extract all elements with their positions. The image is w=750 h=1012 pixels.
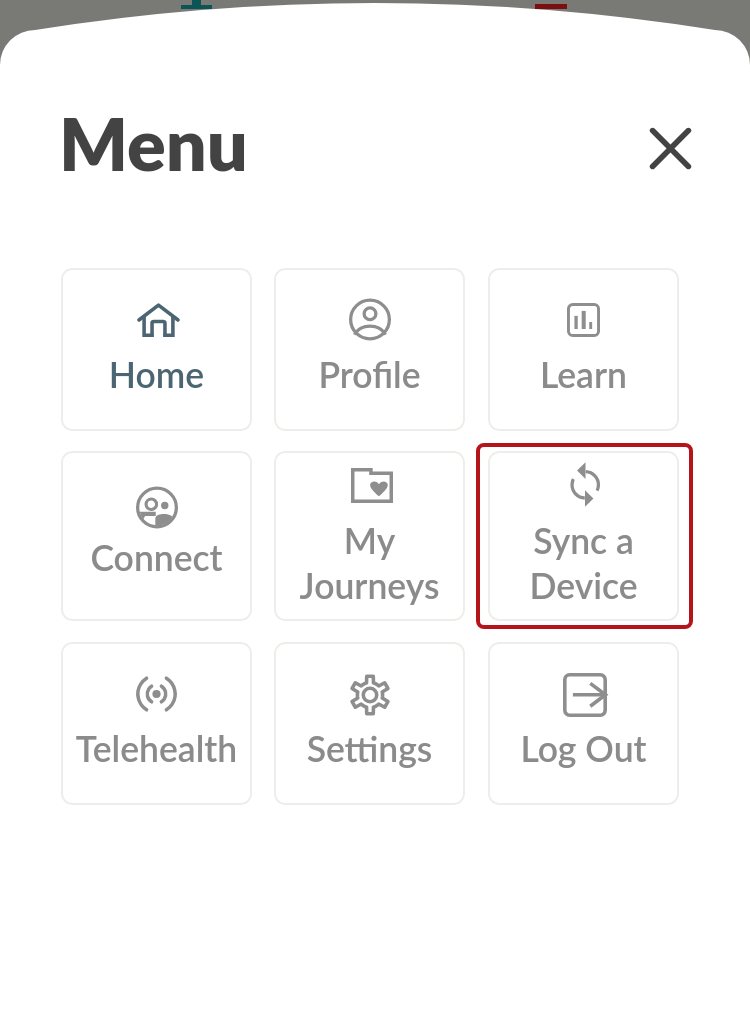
staticText: Telehealth	[61, 727, 252, 770]
button[interactable]: Profile	[274, 268, 465, 431]
button[interactable]: Sync a Device	[488, 451, 679, 621]
staticText: Log Out	[488, 727, 679, 770]
staticText: Settings	[274, 727, 465, 770]
button[interactable]: Learn	[488, 268, 679, 431]
staticText: Connect	[61, 536, 252, 579]
staticText: Learn	[488, 353, 679, 396]
button[interactable]: Log Out	[488, 642, 679, 805]
button[interactable]: My Journeys	[274, 451, 465, 621]
staticText: Sync a Device	[488, 519, 679, 607]
button[interactable]: Settings	[274, 642, 465, 805]
staticText: Menu	[59, 100, 248, 172]
staticText: Profile	[274, 353, 465, 396]
button[interactable]: Close menu	[639, 117, 701, 179]
staticText: Home	[61, 353, 252, 396]
button[interactable]: Telehealth	[61, 642, 252, 805]
button[interactable]: Home	[61, 268, 252, 431]
staticText: My Journeys	[274, 519, 465, 607]
button[interactable]: Connect	[61, 451, 252, 621]
